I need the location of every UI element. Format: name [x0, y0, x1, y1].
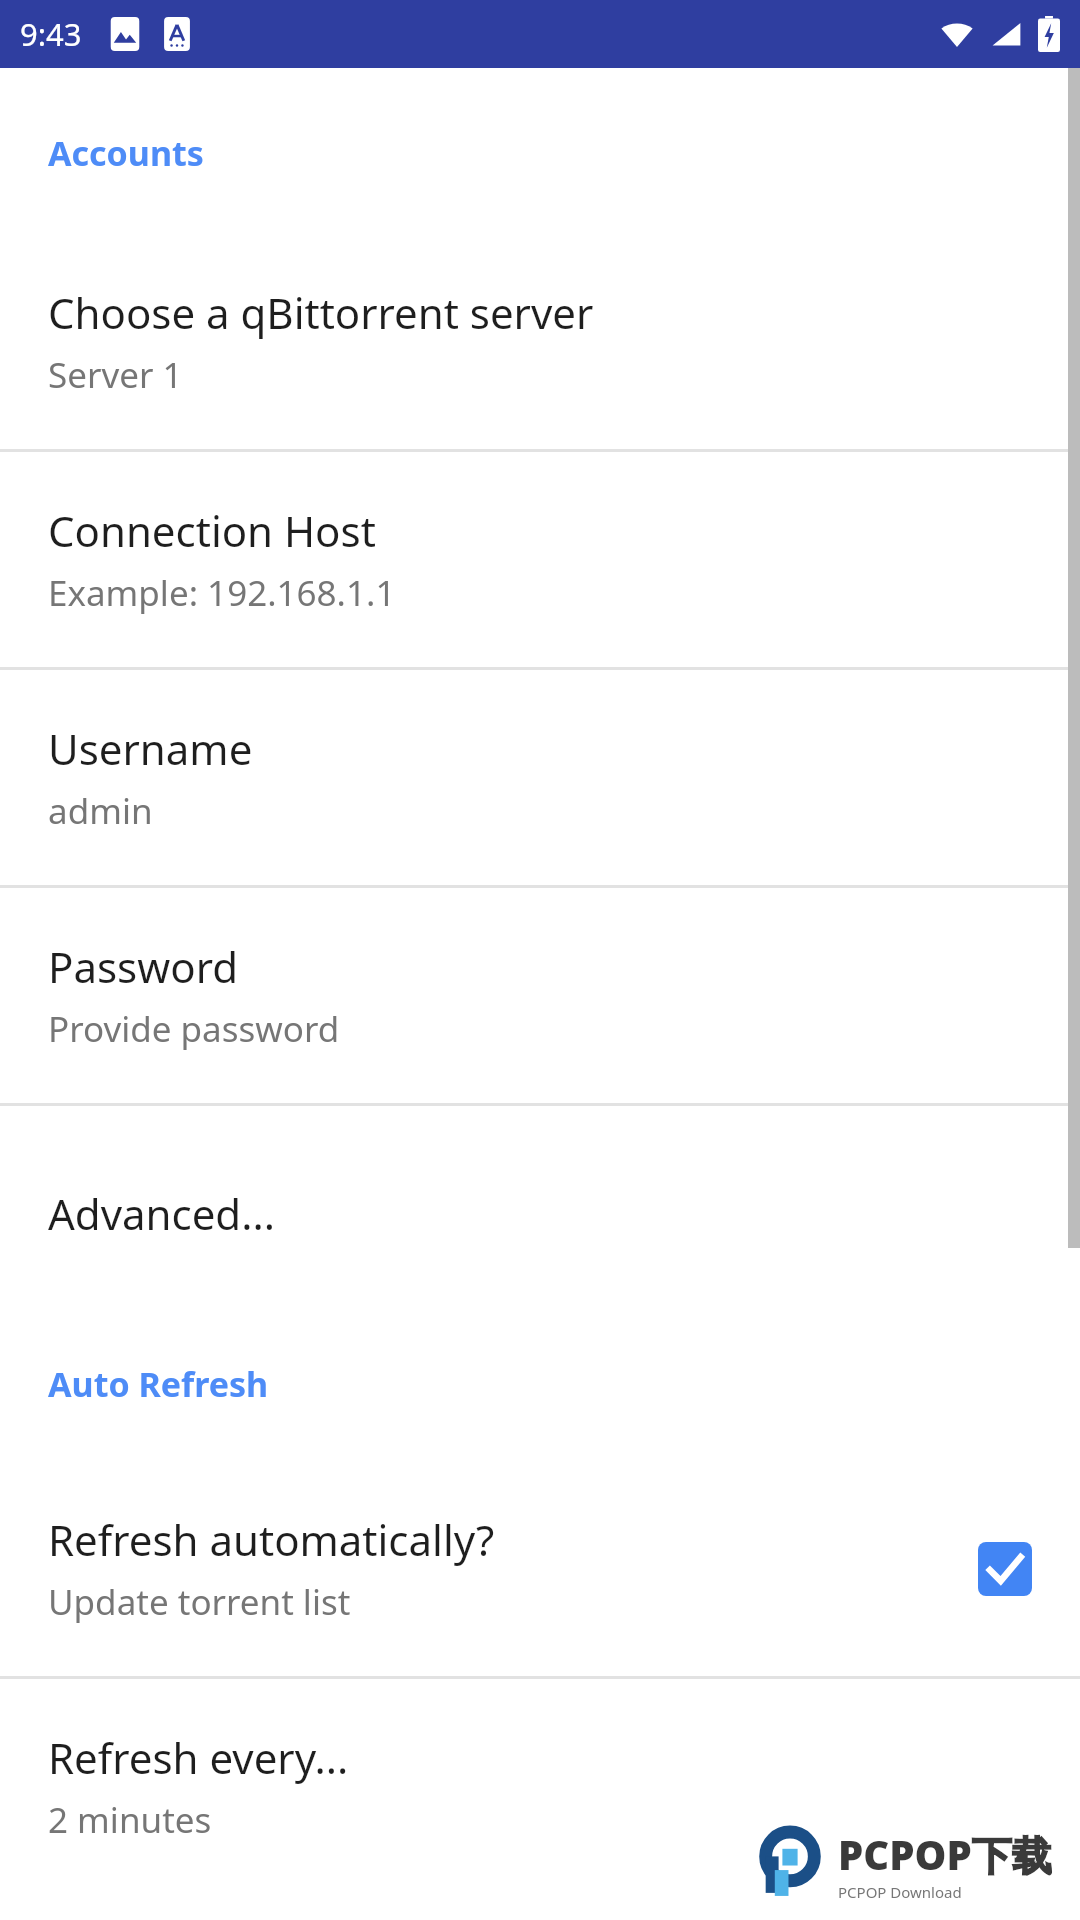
button[interactable]: Refresh automatically? — [0, 1461, 1080, 1676]
button[interactable]: Username — [0, 670, 1080, 885]
staticText: Update torrent list — [48, 1578, 351, 1626]
staticText: Accounts — [48, 130, 204, 176]
staticText: Choose a qBittorrent server — [48, 284, 594, 341]
staticText: PCPOP下载 — [838, 1827, 1052, 1882]
staticText: Provide password — [48, 1005, 340, 1053]
staticText: Refresh every... — [48, 1729, 349, 1786]
staticText: Auto Refresh — [48, 1361, 269, 1407]
staticText: Username — [48, 720, 253, 777]
button[interactable]: Refresh every... — [0, 1679, 1080, 1894]
staticText: Server 1 — [48, 351, 183, 399]
staticText: Example: 192.168.1.1 — [48, 569, 396, 617]
button[interactable]: Refresh automatically toggle — [978, 1542, 1032, 1596]
staticText: Password — [48, 938, 238, 995]
staticText: 2 minutes — [48, 1796, 212, 1844]
staticText: 9:43 — [20, 13, 82, 55]
staticText: Refresh automatically? — [48, 1511, 495, 1568]
button[interactable]: Connection Host — [0, 452, 1080, 667]
staticText: admin — [48, 787, 153, 835]
staticText: Advanced... — [48, 1185, 275, 1242]
button[interactable]: Password — [0, 888, 1080, 1103]
staticText: Connection Host — [48, 502, 376, 559]
staticText: PCPOP Download — [838, 1882, 962, 1902]
button[interactable]: Advanced... — [0, 1106, 1080, 1321]
button[interactable]: Choose a qBittorrent server — [0, 234, 1080, 449]
